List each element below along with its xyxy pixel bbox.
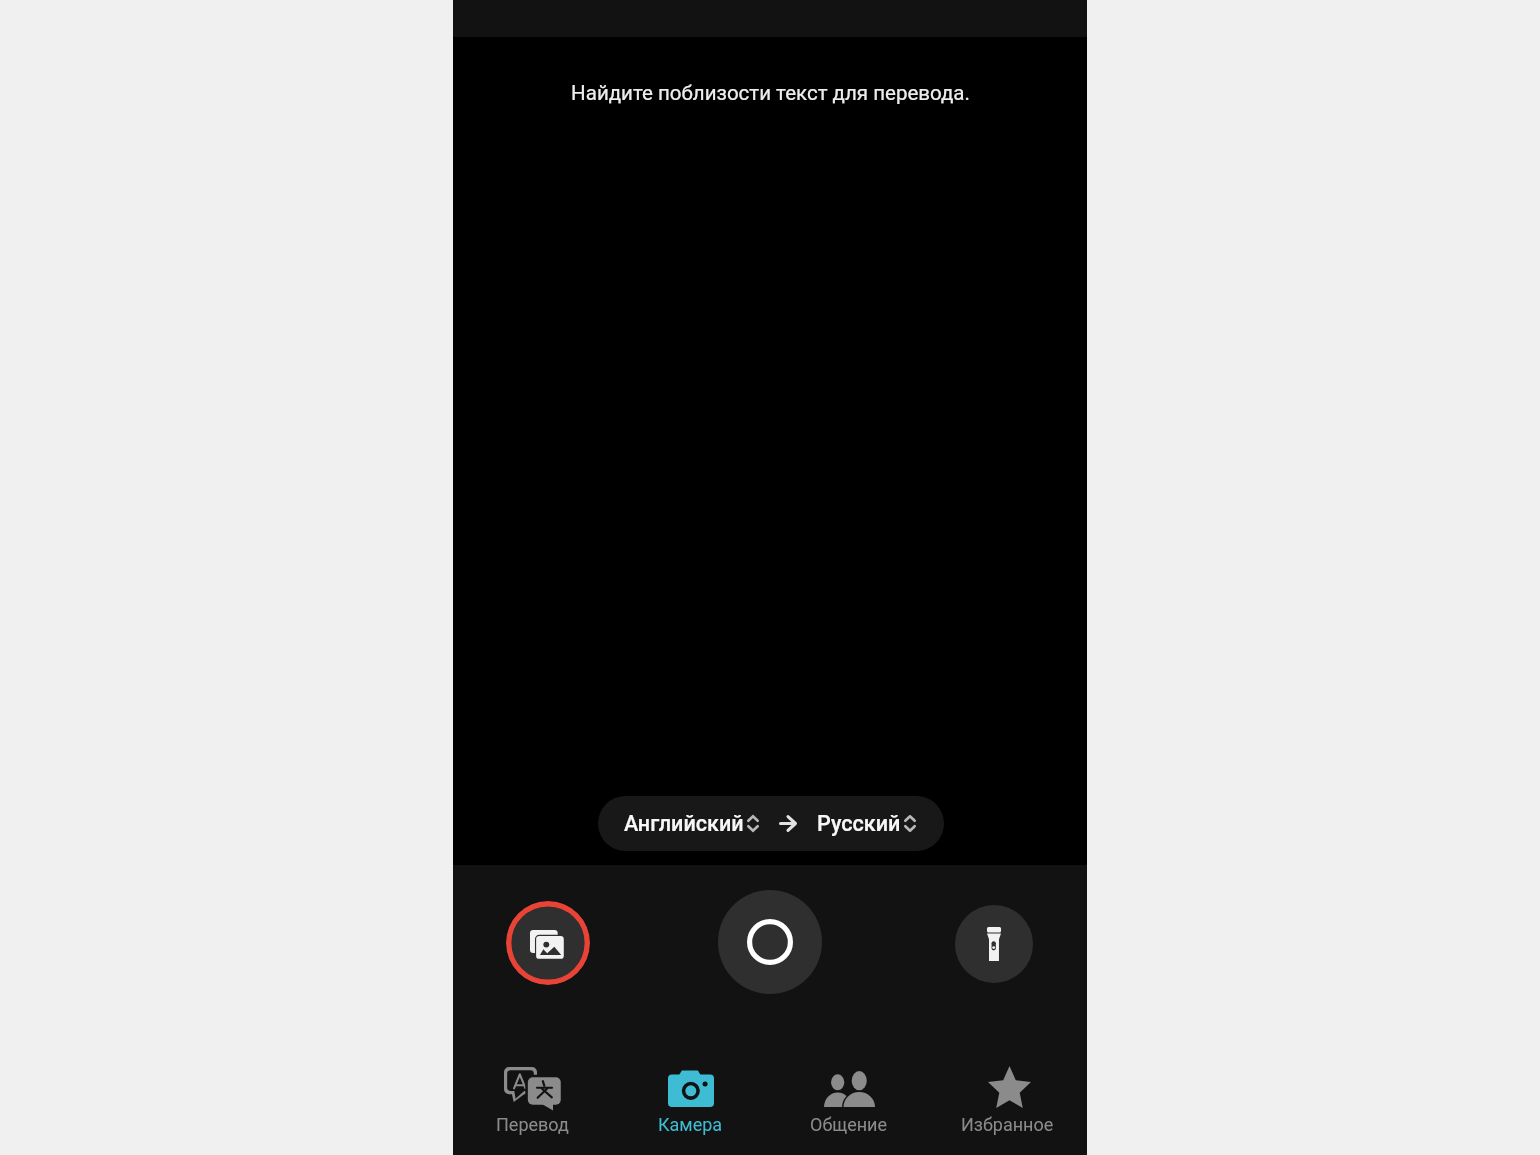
button[interactable]: Избранное [928, 1045, 1087, 1155]
button[interactable]: Русский [797, 796, 944, 851]
button[interactable]: Перевод [453, 1045, 611, 1155]
button[interactable]: Выбрать изображение [506, 901, 590, 985]
button[interactable]: Камера [611, 1045, 769, 1155]
staticText: Перевод [496, 1114, 569, 1135]
staticText: Русский [817, 811, 901, 836]
staticText: Найдите поблизости текст для перевода. [571, 81, 970, 105]
staticText: Избранное [961, 1114, 1054, 1135]
staticText: Английский [624, 811, 744, 836]
button[interactable]: Сделать снимок [718, 890, 822, 994]
button[interactable]: Общение [769, 1045, 928, 1155]
staticText: Общение [810, 1114, 888, 1135]
staticText: Камера [658, 1114, 723, 1135]
button[interactable]: Фонарик [955, 905, 1033, 983]
button[interactable]: Английский [598, 796, 779, 851]
